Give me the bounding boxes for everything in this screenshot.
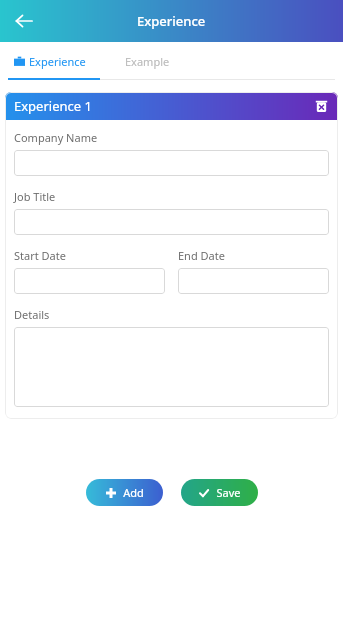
staticText: Experience [29, 54, 86, 69]
button[interactable] [14, 268, 165, 294]
button[interactable]: Save [181, 479, 258, 506]
button[interactable] [14, 327, 329, 407]
staticText: Example [125, 54, 170, 69]
staticText: Start Date [14, 248, 66, 263]
button[interactable]: Example [100, 42, 195, 80]
staticText: Experience [137, 12, 206, 30]
button[interactable]: Back [8, 5, 40, 37]
button[interactable] [14, 209, 329, 235]
button[interactable]: Experience [0, 42, 100, 80]
staticText: End Date [178, 248, 225, 263]
button[interactable]: Add [86, 479, 163, 506]
staticText: Save [216, 485, 241, 500]
staticText: Job Title [14, 189, 56, 204]
staticText: Details [14, 307, 50, 322]
staticText: Experience 1 [14, 97, 92, 115]
staticText: Company Name [14, 130, 98, 145]
button[interactable]: Delete [311, 96, 331, 116]
button[interactable] [14, 150, 329, 176]
staticText: Add [123, 485, 144, 500]
button[interactable] [178, 268, 329, 294]
